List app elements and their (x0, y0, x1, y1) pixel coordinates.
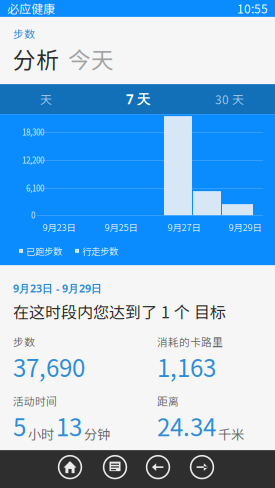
staticText: 行走步数 (82, 244, 118, 258)
staticText: 9月23日 (42, 220, 75, 234)
button[interactable]: 30 天 (184, 84, 275, 114)
staticText: 步数 (13, 334, 35, 349)
staticText: 分析 (13, 42, 59, 75)
staticText: 12,200 (22, 154, 44, 166)
staticText: 天 (40, 90, 52, 108)
staticText: 9月23日 - 9月29日 (13, 281, 102, 296)
staticText: 小时 (28, 424, 54, 443)
staticText: 30 天 (215, 90, 244, 108)
staticText: 千米 (218, 424, 244, 443)
button[interactable]: 7 天 (92, 84, 184, 114)
staticText: 24.34 (157, 408, 216, 443)
staticText: 9月27日 (167, 220, 200, 234)
staticText: 7 天 (126, 90, 150, 108)
staticText: 18,300 (22, 126, 44, 138)
staticText: 37,690 (13, 349, 85, 384)
staticText: 6,100 (26, 182, 44, 194)
button[interactable]: 今天 (68, 42, 114, 75)
staticText: 10:55 (237, 0, 268, 17)
staticText: 0 (31, 209, 35, 221)
staticText: 5 (13, 408, 26, 443)
staticText: 9月25日 (104, 220, 137, 234)
staticText: 9月29日 (228, 220, 261, 234)
staticText: 已跑步数 (26, 244, 62, 258)
staticText: 在这时段内您达到了 1 个 目标 (13, 300, 226, 323)
staticText: 1,163 (157, 349, 216, 384)
staticText: 分钟 (84, 424, 110, 443)
button[interactable]: 天 (0, 84, 92, 114)
button[interactable]: 分析 (13, 42, 59, 75)
staticText: 距离 (157, 393, 179, 408)
staticText: 13 (56, 408, 82, 443)
staticText: 步数 (13, 26, 35, 41)
staticText: 必应健康 (7, 0, 55, 17)
staticText: 今天 (68, 42, 114, 75)
staticText: 消耗的卡路里 (157, 334, 223, 349)
staticText: 活动时间 (13, 393, 57, 408)
